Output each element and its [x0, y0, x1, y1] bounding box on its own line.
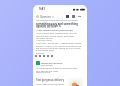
- staticText: If you wish, tell me the — being details…: [36, 42, 82, 51]
- staticText: evening: [36, 52, 44, 55]
- button[interactable]: Gemini: [36, 14, 54, 19]
- staticText: Here are some great dining ideas for ton…: [36, 19, 78, 22]
- staticText: Here are a few picks.: [36, 26, 57, 29]
- staticText: something cozy and something upscale to …: [36, 22, 78, 28]
- button[interactable]: Two gorgeous delivery: [36, 78, 83, 86]
- staticText: • Cozy serving spaces (evening half): [36, 29, 74, 32]
- staticText: Spreadsheet: [41, 64, 53, 67]
- staticText: • Upscale rooms: [36, 39, 52, 42]
- staticText: Let me know if you want a reservation pl…: [36, 67, 78, 72]
- staticText: 9:41: [39, 7, 45, 11]
- staticText: Show me more: [36, 71, 51, 74]
- button[interactable]: Weekend Checklist: [36, 61, 63, 67]
- staticText: Today, after some inspirations — best cu…: [36, 83, 66, 86]
- staticText: Weekend Checklist: [41, 61, 63, 64]
- staticText: Two gorgeous delivery: [36, 78, 65, 82]
- staticText: A warm bistro with candlelit seats, an e…: [36, 32, 77, 39]
- staticText: Gemini: [40, 15, 51, 19]
